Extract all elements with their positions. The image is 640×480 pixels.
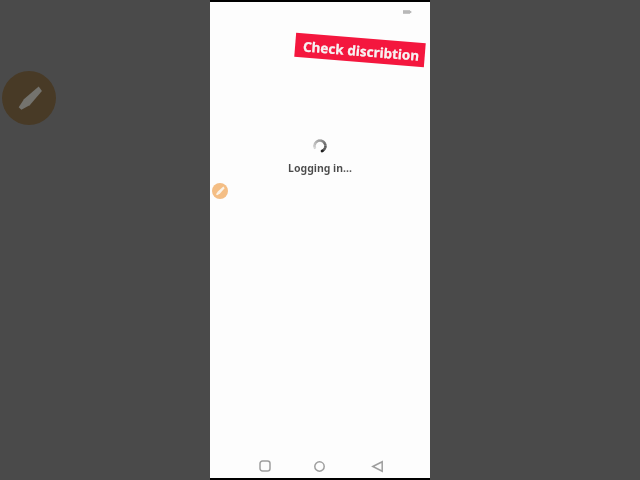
button[interactable]: Back <box>363 452 391 480</box>
staticText: Check discribtion <box>302 37 420 65</box>
button[interactable]: Check discribtion <box>294 33 426 67</box>
button[interactable]: Brush tool <box>2 71 56 125</box>
button[interactable]: Brush tool <box>212 183 228 199</box>
staticText: Logging in... <box>288 161 352 175</box>
button[interactable]: Recents <box>251 452 279 480</box>
button[interactable]: Home <box>305 452 333 480</box>
